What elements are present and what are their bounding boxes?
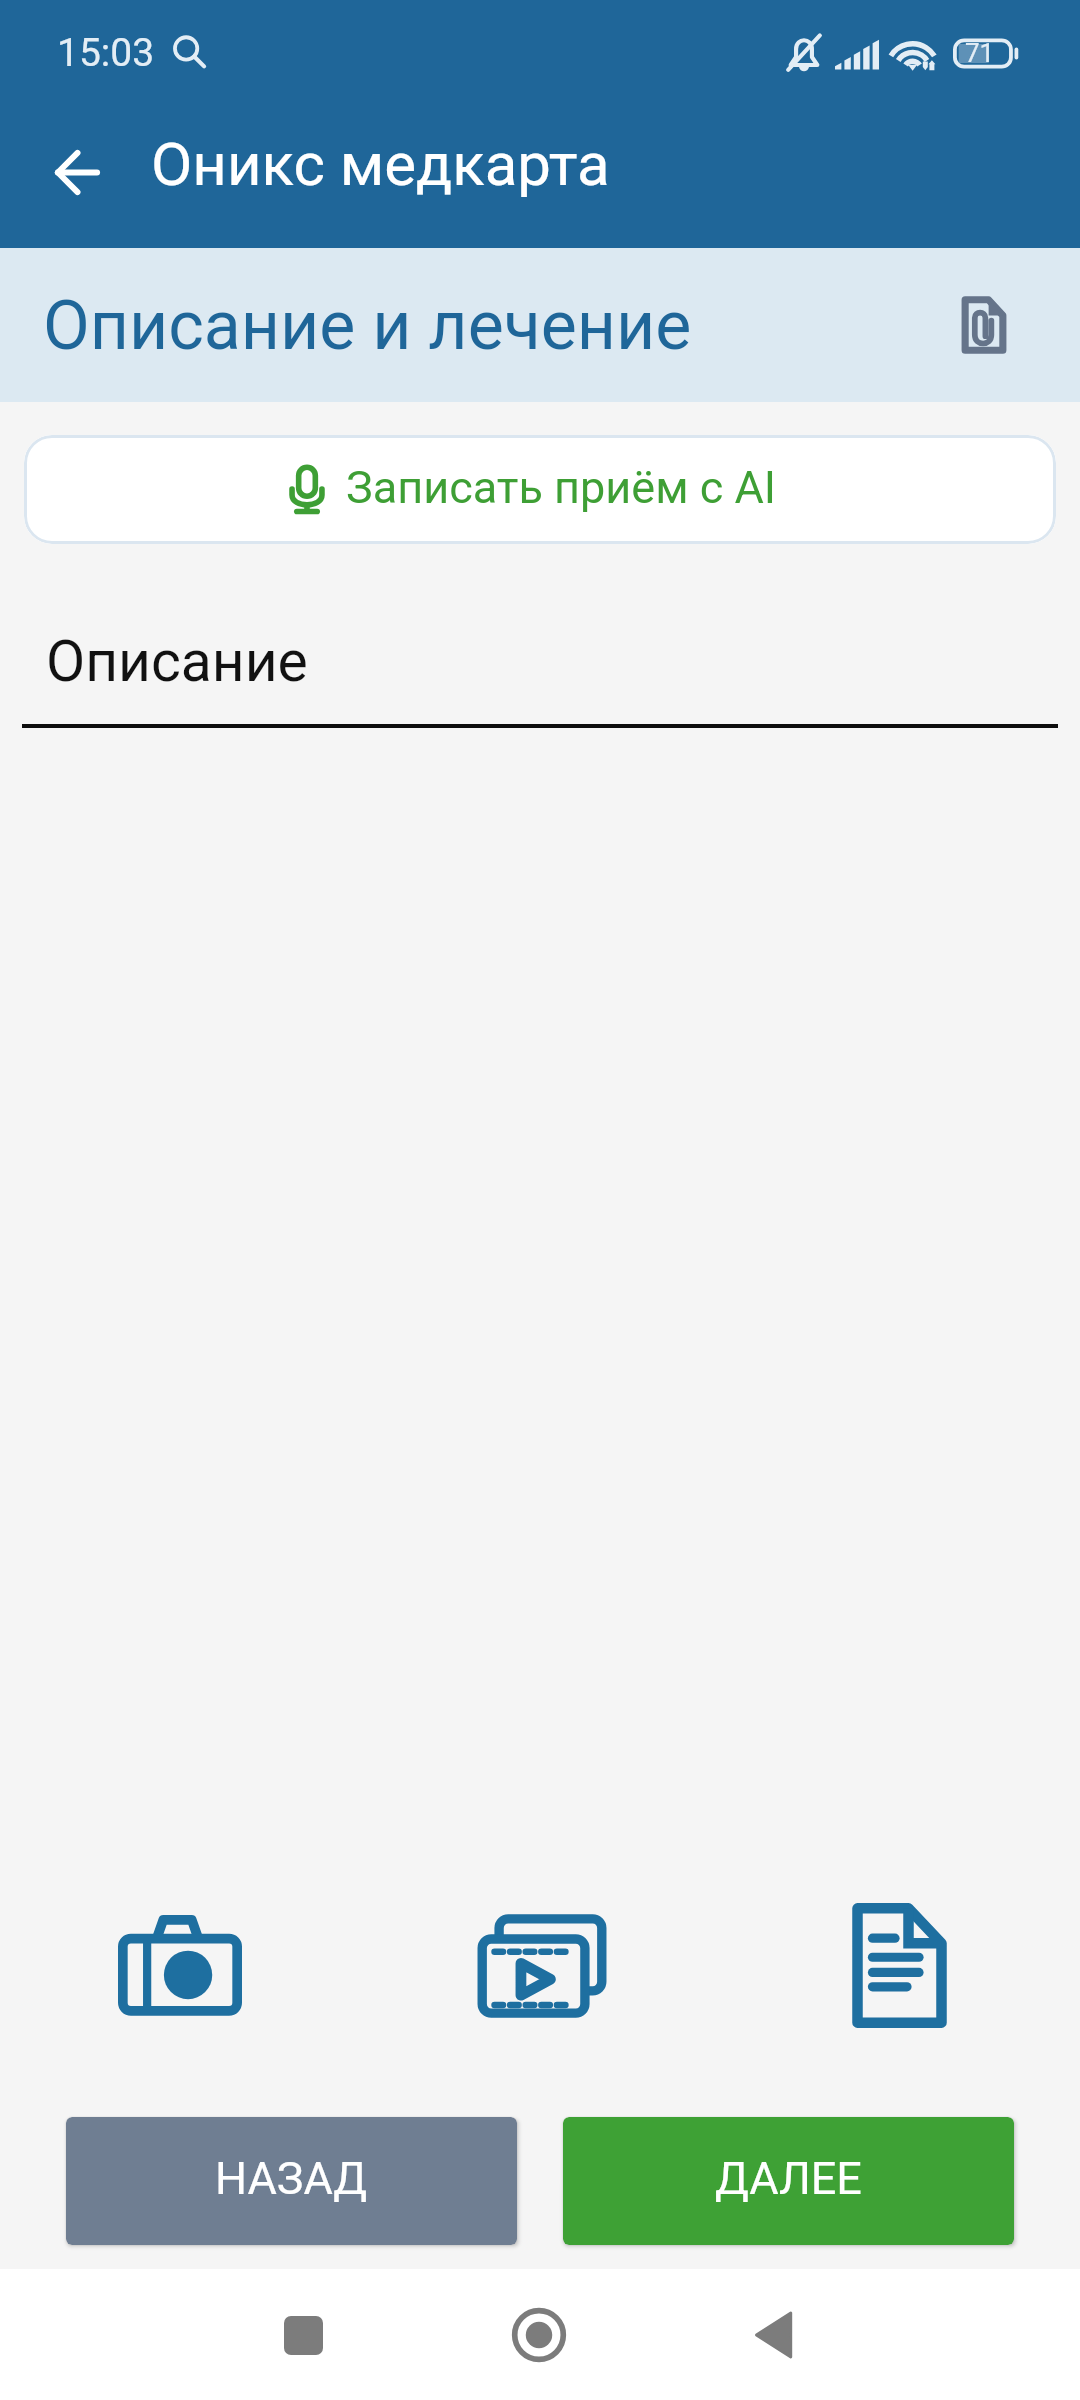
button[interactable]: Главный экран [479, 2275, 599, 2395]
staticText: Описание [46, 628, 308, 695]
button[interactable]: Записать видео [469, 1883, 609, 2043]
staticText: Записать приём с AI [346, 461, 776, 514]
button[interactable]: Последние приложения [243, 2275, 363, 2395]
staticText: ДАЛЕЕ [715, 2152, 862, 2205]
button[interactable]: Добавить документ [829, 1883, 969, 2043]
staticText: 15:03 [57, 30, 155, 76]
staticText: 71 [965, 38, 995, 68]
button[interactable]: Назад [714, 2275, 834, 2395]
button[interactable]: ДАЛЕЕ [563, 2117, 1014, 2245]
button[interactable]: Записать приём с AI [24, 435, 1056, 544]
button[interactable]: Сделать фото [110, 1883, 250, 2043]
button[interactable]: Назад [31, 128, 123, 220]
button[interactable]: Прикрепить файл [942, 283, 1026, 367]
staticText: НАЗАД [215, 2152, 368, 2205]
staticText: Оникс медкарта [151, 129, 610, 199]
button[interactable]: НАЗАД [66, 2117, 517, 2245]
staticText: Описание и лечение [43, 286, 692, 366]
